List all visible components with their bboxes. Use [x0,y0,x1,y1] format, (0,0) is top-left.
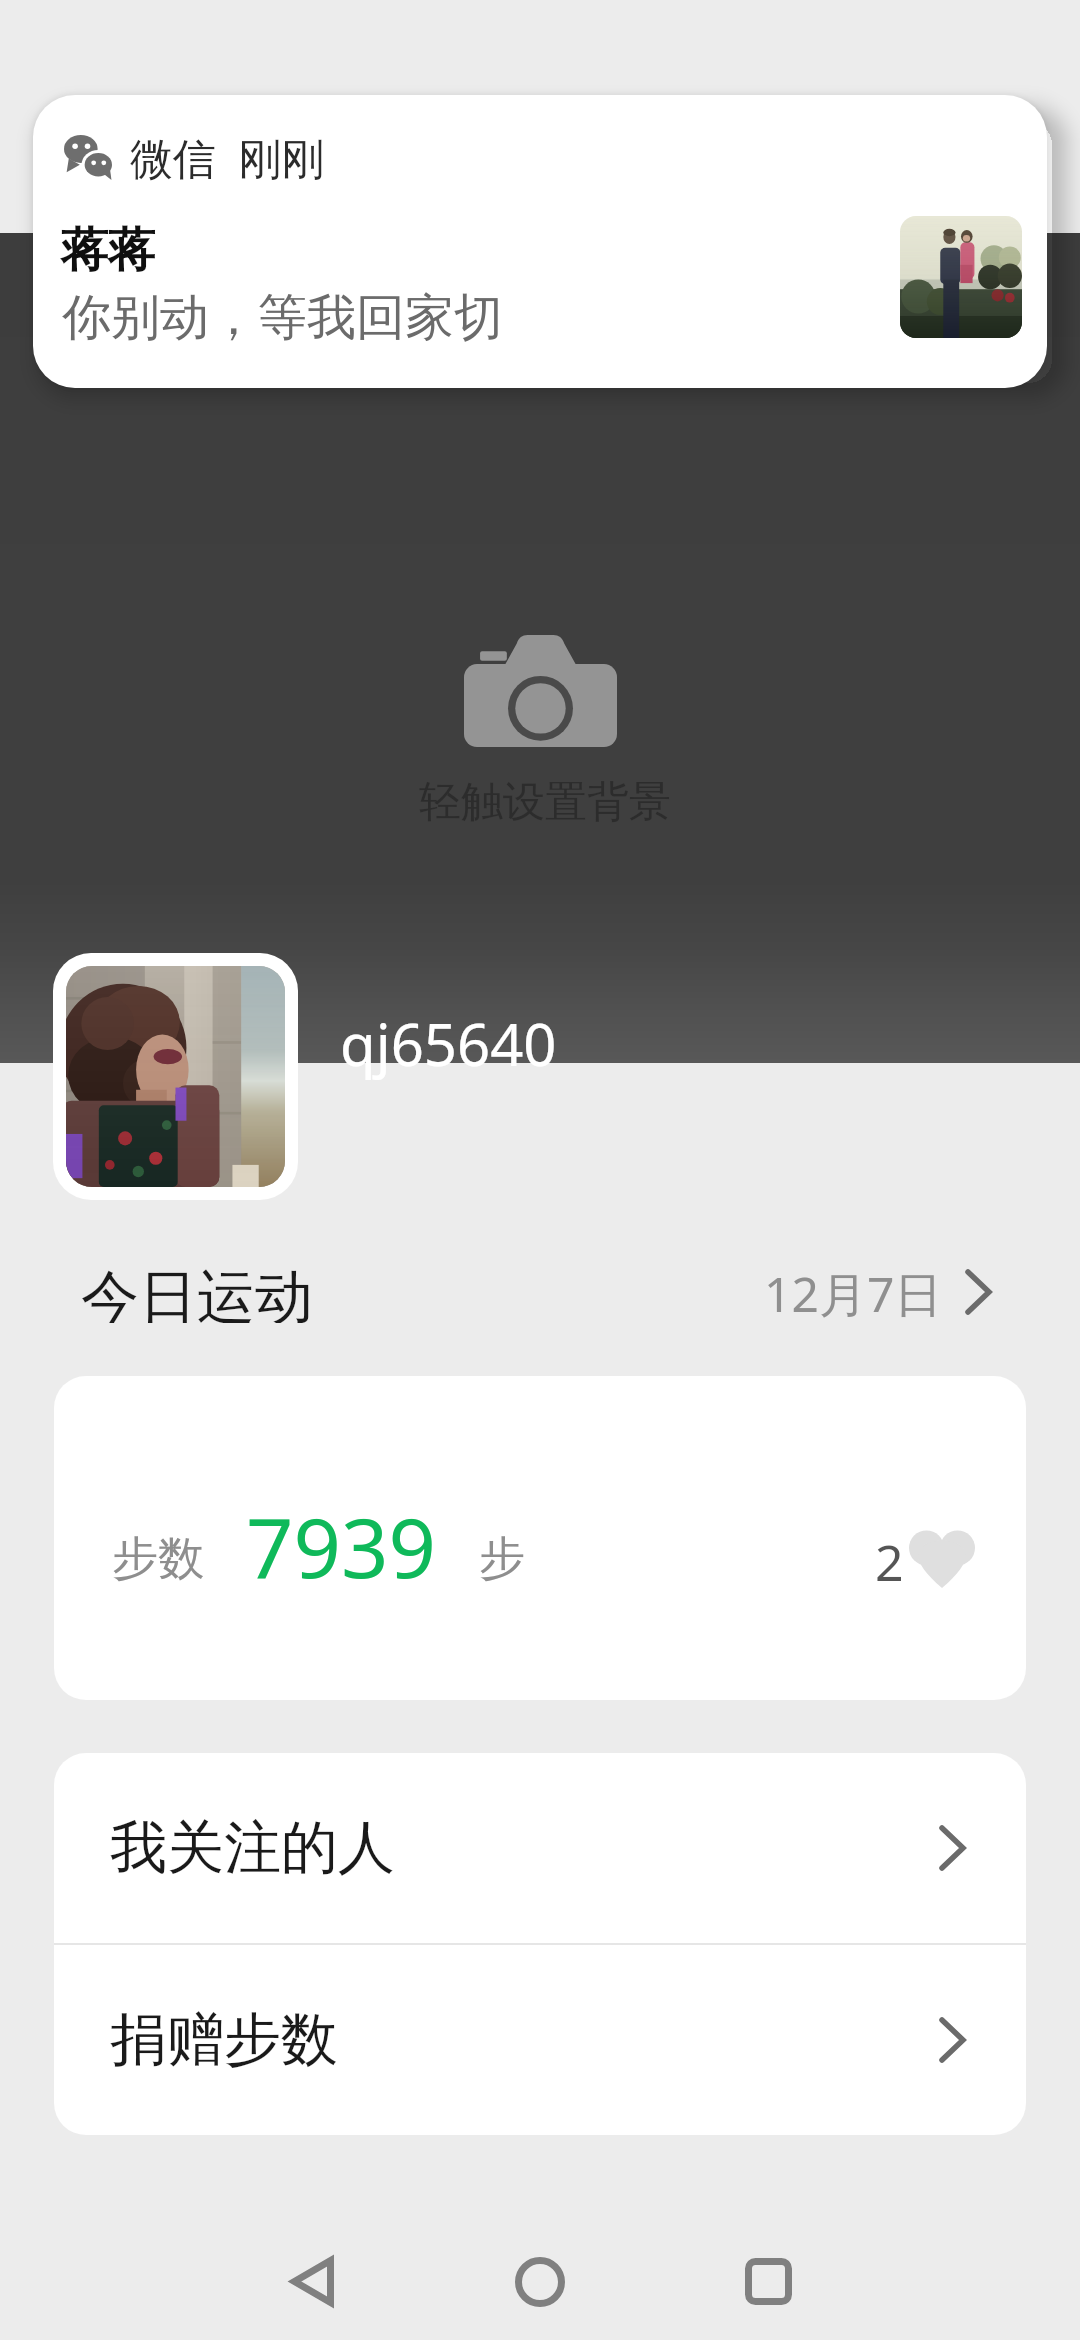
staticText: 轻触设置背景 [419,776,671,829]
button[interactable]: 我关注的人 [54,1753,1026,1943]
staticText: 你别动，等我回家切 [62,287,503,349]
staticText: 7939 [246,1489,436,1602]
staticText: qj65640 [340,1004,557,1083]
button[interactable]: Back [232,2232,392,2331]
staticText: 微信 刚刚 [130,128,325,187]
button[interactable]: 步数 [54,1376,1026,1700]
button[interactable]: 12月7日 [764,1261,990,1323]
button[interactable]: 微信 刚刚 [33,95,1047,388]
staticText: 今日运动 [81,1261,313,1323]
staticText: 捐赠步数 [110,2004,338,2076]
button[interactable]: Profile photo [66,966,285,1187]
staticText: 2 [875,1528,904,1596]
staticText: 步 [479,1530,525,1588]
button[interactable]: Recent apps [688,2232,848,2331]
button[interactable]: Set background [0,233,1080,1063]
staticText: 我关注的人 [110,1812,395,1884]
staticText: 12月7日 [764,1261,943,1323]
button[interactable]: 捐赠步数 [54,1945,1026,2135]
staticText: 蒋蒋 [61,221,155,280]
button[interactable]: Home [460,2232,620,2331]
staticText: 步数 [112,1530,204,1588]
